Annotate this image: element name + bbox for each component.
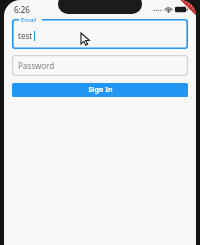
button[interactable]: Sign In xyxy=(12,83,188,97)
button[interactable]: Email xyxy=(12,19,188,49)
other: Pointer xyxy=(4,0,196,245)
button[interactable]: Password xyxy=(12,55,188,76)
staticText: 6:26 xyxy=(14,4,30,15)
staticText: Email xyxy=(21,16,37,24)
staticText: test xyxy=(18,30,33,41)
staticText: Sign In xyxy=(88,85,113,95)
staticText: Password xyxy=(18,60,55,71)
